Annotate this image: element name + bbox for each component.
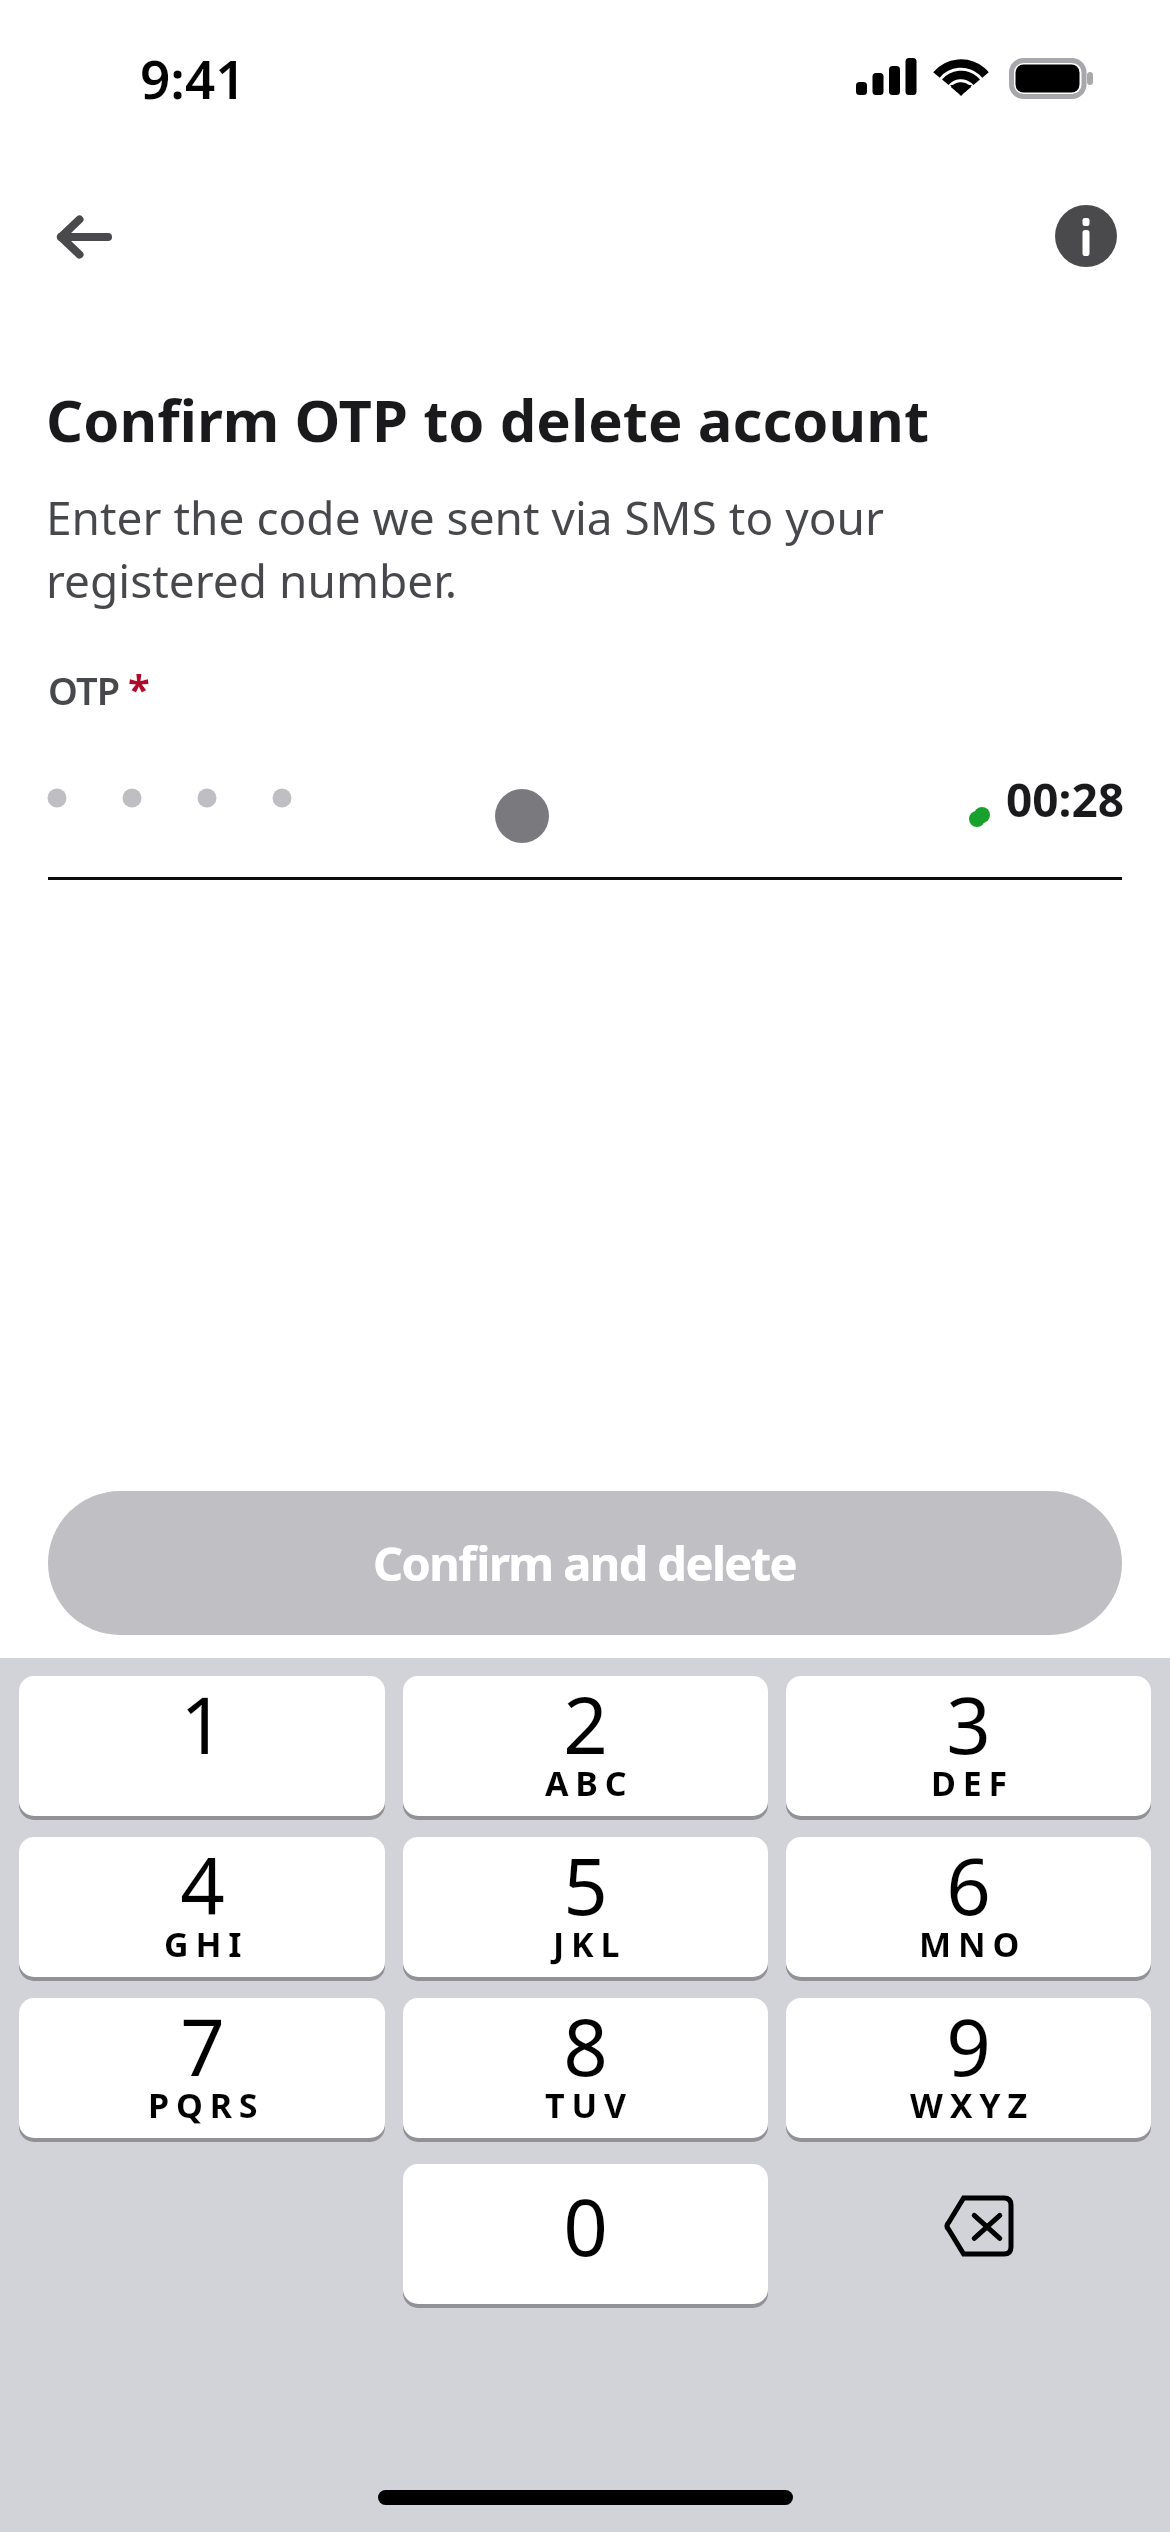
staticText: Confirm and delete	[373, 1531, 797, 1595]
staticText: A B C	[545, 1760, 626, 1806]
button[interactable]: 4	[19, 1837, 385, 1977]
button[interactable]: 7	[19, 1998, 385, 2138]
staticText: M N O	[919, 1921, 1019, 1967]
button[interactable]: Back	[36, 189, 132, 285]
button[interactable]: 0	[403, 2164, 768, 2304]
staticText: 7	[180, 1998, 225, 2099]
button[interactable]: 6	[786, 1837, 1151, 1977]
staticText: Confirm OTP to delete account	[46, 380, 930, 459]
staticText: 00:28	[1006, 768, 1125, 831]
button[interactable]: 1	[19, 1676, 385, 1816]
button[interactable]: Backspace	[839, 2164, 1099, 2309]
button[interactable]: 2	[403, 1676, 768, 1816]
staticText: 6	[946, 1837, 991, 1938]
staticText: 0	[563, 2173, 608, 2279]
staticText: 3	[946, 1676, 991, 1777]
staticText: 2	[563, 1676, 608, 1777]
staticText: Enter the code we sent via SMS to your r…	[46, 486, 884, 612]
staticText: 9	[946, 1998, 991, 2099]
staticText: J K L	[553, 1921, 619, 1967]
staticText: G H I	[164, 1921, 241, 1967]
button[interactable]: OTP input	[48, 740, 1122, 880]
button[interactable]: 8	[403, 1998, 768, 2138]
staticText: D E F	[931, 1760, 1007, 1806]
staticText: 4	[180, 1837, 225, 1938]
staticText: 8	[563, 1998, 608, 2099]
button[interactable]: 9	[786, 1998, 1151, 2138]
staticText: 9:41	[140, 42, 246, 114]
button[interactable]: Information	[1055, 205, 1117, 267]
staticText: T U V	[545, 2082, 626, 2128]
staticText: 5	[563, 1837, 608, 1938]
button[interactable]: 3	[786, 1676, 1151, 1816]
staticText: W X Y Z	[910, 2082, 1027, 2128]
staticText: *	[128, 661, 150, 715]
staticText: 1	[180, 1676, 225, 1777]
button[interactable]: 5	[403, 1837, 768, 1977]
button[interactable]: Confirm and delete	[48, 1491, 1122, 1635]
staticText: P Q R S	[148, 2082, 257, 2128]
staticText: OTP	[48, 664, 120, 716]
